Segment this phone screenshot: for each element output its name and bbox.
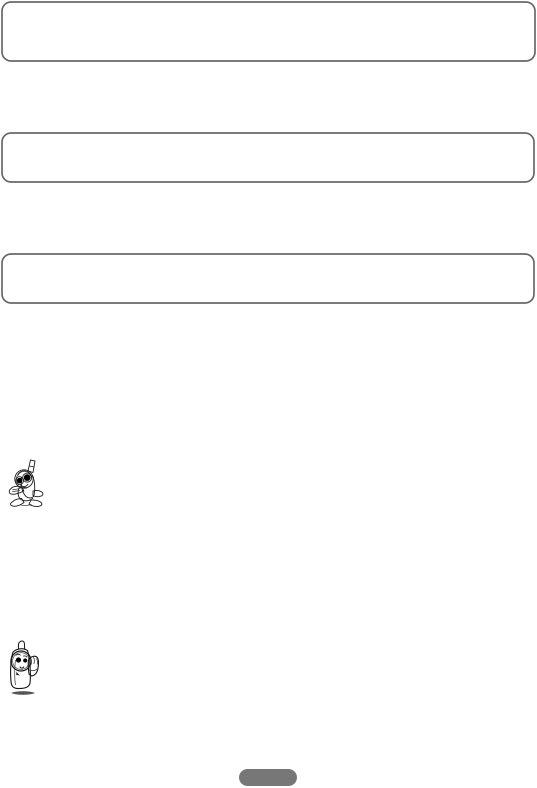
button[interactable]: Waving phone mascot	[8, 638, 42, 696]
button[interactable]: Text field 2	[2, 133, 534, 182]
button[interactable]: Text field 1	[2, 2, 535, 61]
button[interactable]: Running phone mascot	[8, 459, 46, 508]
button[interactable]: Text field 3	[2, 254, 534, 303]
